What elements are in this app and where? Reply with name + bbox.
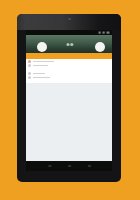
button[interactable]: Profile — [37, 42, 47, 52]
button[interactable]: Account — [95, 42, 105, 52]
button[interactable] — [26, 75, 112, 79]
button[interactable] — [26, 59, 112, 63]
button[interactable] — [26, 63, 112, 67]
button[interactable] — [26, 71, 112, 75]
